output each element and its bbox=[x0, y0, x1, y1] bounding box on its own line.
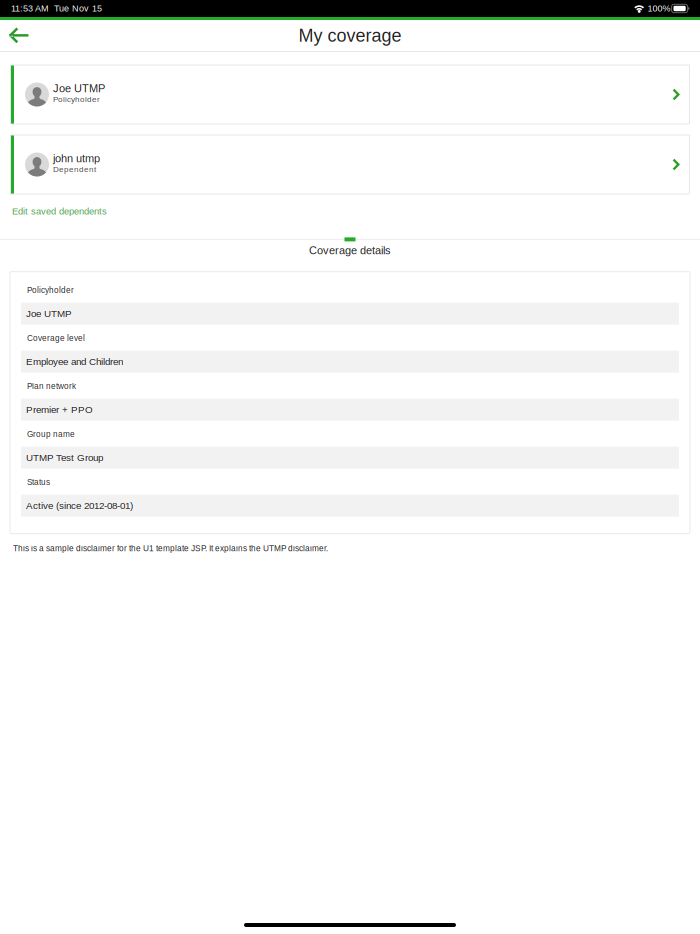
button[interactable]: john utmp bbox=[10, 135, 689, 194]
staticText: 100% bbox=[648, 3, 671, 14]
staticText: Employee and Children bbox=[26, 356, 123, 367]
button[interactable]: Edit saved dependents bbox=[0, 202, 107, 216]
staticText: Tue Nov 15 bbox=[54, 3, 102, 14]
staticText: Policyholder bbox=[53, 95, 100, 104]
staticText: Premier + PPO bbox=[26, 404, 93, 415]
staticText: Coverage level bbox=[27, 333, 85, 343]
staticText: Dependent bbox=[53, 165, 96, 174]
staticText: Edit saved dependents bbox=[12, 206, 107, 216]
button[interactable]: Joe UTMP bbox=[10, 65, 689, 124]
staticText: Policyholder bbox=[27, 285, 74, 295]
staticText: UTMP Test Group bbox=[26, 452, 103, 463]
staticText: My coverage bbox=[298, 25, 401, 45]
staticText: Joe UTMP bbox=[53, 82, 105, 95]
button[interactable]: Back bbox=[0, 20, 38, 51]
staticText: Plan network bbox=[27, 381, 76, 391]
staticText: 11:53 AM bbox=[11, 3, 48, 14]
staticText: This is a sample disclaimer for the U1 t… bbox=[13, 544, 328, 553]
staticText: Coverage details bbox=[309, 244, 391, 257]
staticText: Active (since 2012-08-01) bbox=[26, 500, 133, 511]
staticText: john utmp bbox=[53, 152, 100, 165]
staticText: Joe UTMP bbox=[26, 308, 72, 319]
staticText: Group name bbox=[27, 429, 75, 439]
staticText: Status bbox=[27, 477, 50, 487]
